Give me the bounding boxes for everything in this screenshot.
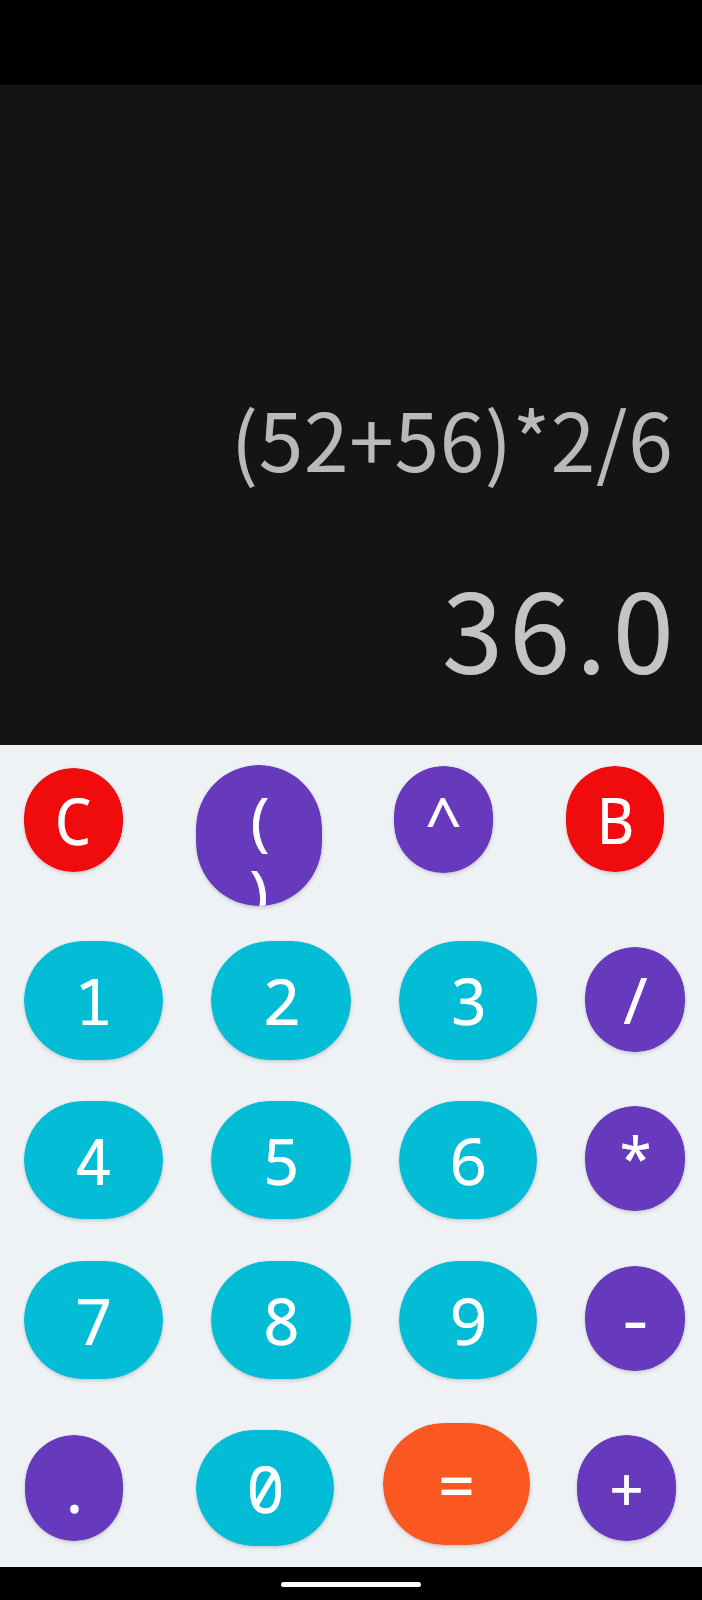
- button[interactable]: =: [383, 1423, 530, 1545]
- staticText: (52+56)*2/6: [231, 379, 674, 495]
- staticText: 3: [449, 957, 488, 1044]
- staticText: 36.0: [442, 546, 680, 705]
- button[interactable]: *: [585, 1106, 685, 1211]
- staticText: +: [607, 1445, 646, 1532]
- staticText: 4: [74, 1117, 113, 1204]
- staticText: 9: [449, 1277, 488, 1364]
- staticText: 1: [74, 957, 113, 1044]
- staticText: /: [616, 956, 655, 1043]
- button[interactable]: /: [585, 947, 685, 1052]
- button[interactable]: .: [25, 1435, 123, 1541]
- button[interactable]: 9: [399, 1261, 537, 1379]
- button[interactable]: 8: [211, 1261, 351, 1379]
- button[interactable]: -: [585, 1266, 685, 1371]
- staticText: 7: [74, 1277, 113, 1364]
- button[interactable]: 5: [211, 1101, 351, 1219]
- staticText: .: [55, 1445, 94, 1532]
- button[interactable]: 6: [399, 1101, 537, 1219]
- button[interactable]: parentheses: [196, 765, 322, 906]
- staticText: ( ): [240, 776, 279, 906]
- staticText: 8: [262, 1277, 301, 1364]
- staticText: 5: [262, 1117, 301, 1204]
- button[interactable]: 7: [24, 1261, 163, 1379]
- staticText: -: [616, 1275, 655, 1362]
- button[interactable]: ^: [394, 766, 493, 873]
- staticText: *: [616, 1115, 655, 1202]
- staticText: 6: [449, 1117, 488, 1204]
- staticText: 2: [262, 957, 301, 1044]
- button[interactable]: 1: [24, 941, 163, 1060]
- button[interactable]: C: [24, 768, 123, 872]
- staticText: ^: [424, 776, 463, 863]
- button[interactable]: +: [577, 1435, 676, 1541]
- button[interactable]: 4: [24, 1101, 163, 1219]
- button[interactable]: 2: [211, 941, 351, 1060]
- button[interactable]: 0: [196, 1430, 334, 1546]
- button[interactable]: B: [566, 766, 664, 872]
- staticText: =: [437, 1441, 476, 1528]
- staticText: C: [54, 777, 93, 864]
- staticText: B: [596, 776, 635, 863]
- staticText: 0: [246, 1445, 285, 1532]
- button[interactable]: 3: [399, 941, 537, 1060]
